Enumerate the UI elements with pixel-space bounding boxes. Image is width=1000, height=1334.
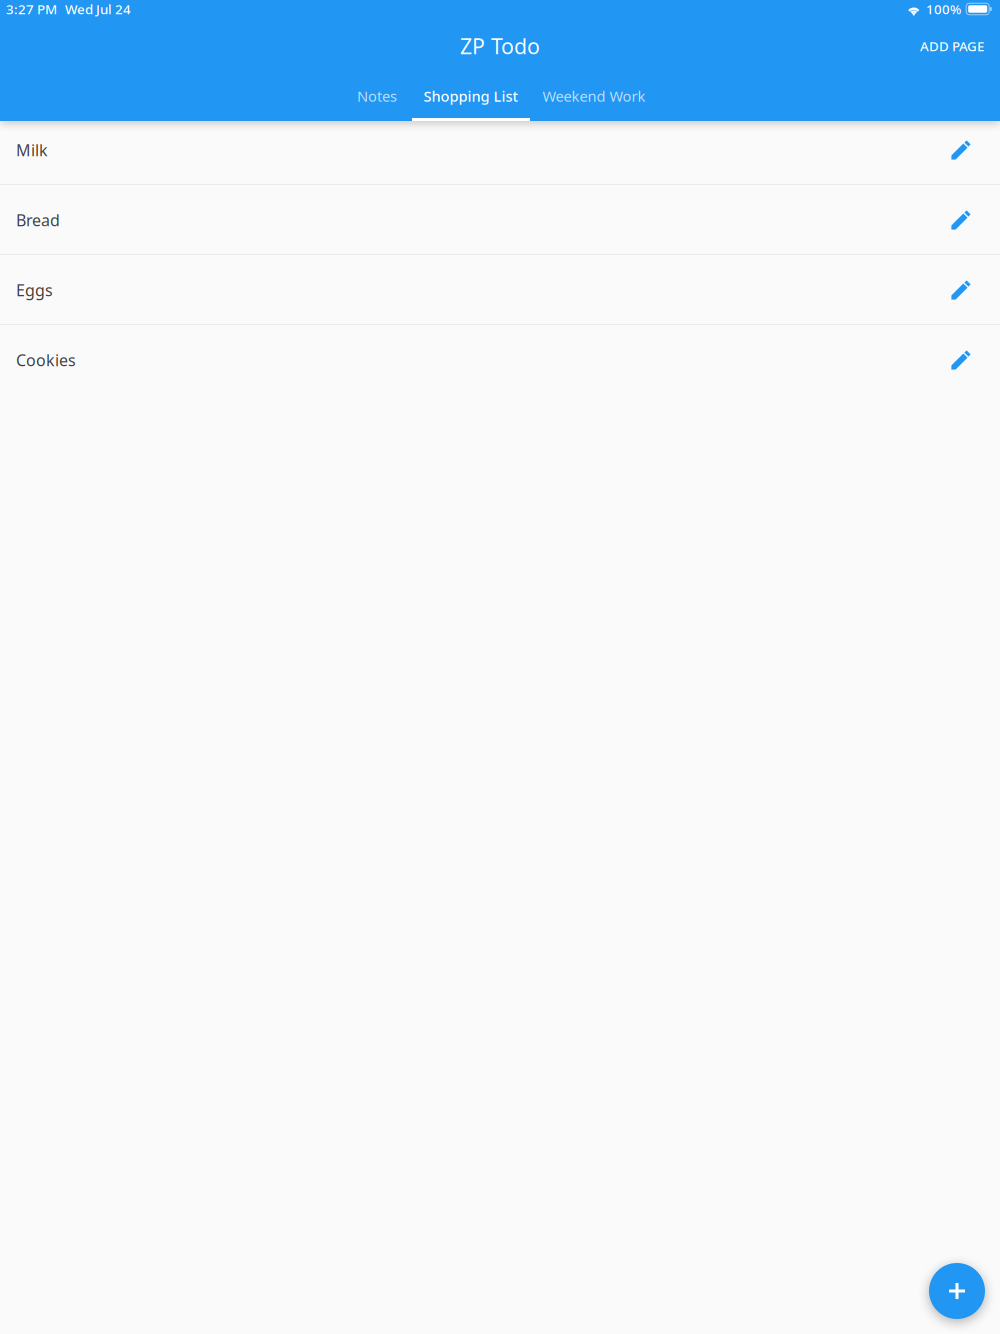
staticText: 3:27 PM xyxy=(6,0,57,18)
staticText: ZP Todo xyxy=(460,32,540,60)
button[interactable]: Milk xyxy=(0,115,1000,185)
button[interactable]: Cookies xyxy=(0,325,1000,395)
button[interactable]: Add item xyxy=(929,1263,985,1319)
staticText: Milk xyxy=(16,139,48,161)
button[interactable]: Edit Eggs xyxy=(937,266,985,314)
button[interactable]: Weekend Work xyxy=(530,74,658,121)
staticText: Cookies xyxy=(16,349,76,371)
button[interactable]: Edit Milk xyxy=(937,126,985,174)
staticText: Weekend Work xyxy=(542,86,645,106)
button[interactable]: Edit Bread xyxy=(937,196,985,244)
staticText: Bread xyxy=(16,209,60,231)
staticText: Wed Jul 24 xyxy=(65,0,131,18)
staticText: 100% xyxy=(926,0,961,18)
button[interactable]: ADD PAGE xyxy=(904,26,1000,66)
button[interactable]: Edit Cookies xyxy=(937,336,985,384)
button[interactable]: Eggs xyxy=(0,255,1000,325)
staticText: Notes xyxy=(357,86,397,106)
staticText: ADD PAGE xyxy=(920,37,984,55)
button[interactable]: Shopping List xyxy=(412,74,530,121)
staticText: Eggs xyxy=(16,279,53,301)
button[interactable]: Bread xyxy=(0,185,1000,255)
staticText: Shopping List xyxy=(423,86,518,106)
button[interactable]: Notes xyxy=(342,74,412,121)
